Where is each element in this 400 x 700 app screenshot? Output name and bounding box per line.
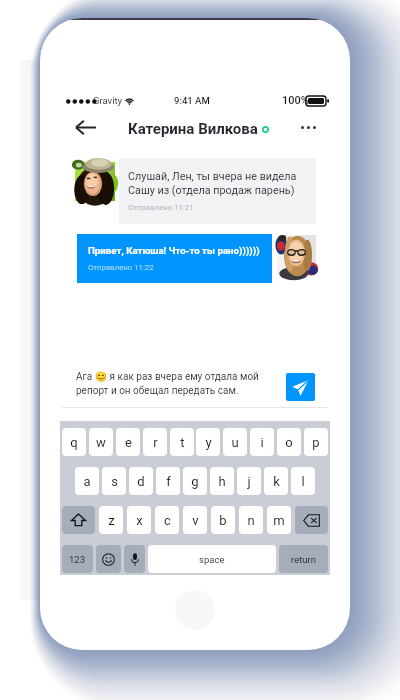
staticText: s bbox=[111, 474, 118, 489]
button[interactable]: j bbox=[237, 467, 261, 495]
staticText: c bbox=[164, 513, 171, 528]
button[interactable]: Катерина Вилкова bbox=[128, 117, 269, 140]
button[interactable]: i bbox=[250, 428, 274, 456]
button[interactable]: q bbox=[62, 428, 86, 456]
button[interactable]: o bbox=[277, 428, 301, 456]
button[interactable]: p bbox=[304, 428, 328, 456]
button[interactable]: g bbox=[183, 467, 207, 495]
staticText: Катерина Вилкова bbox=[128, 120, 258, 138]
button[interactable]: x bbox=[127, 506, 151, 534]
button[interactable]: y bbox=[196, 428, 220, 456]
button[interactable]: b bbox=[211, 506, 235, 534]
button[interactable]: h bbox=[210, 467, 234, 495]
button[interactable]: d bbox=[129, 467, 153, 495]
staticText: Привет, Катюша! Что-то ты рано)))))) bbox=[88, 245, 260, 256]
staticText: d bbox=[137, 474, 145, 489]
staticText: Отправлено 11:21 bbox=[128, 203, 194, 212]
button[interactable]: Numbers bbox=[62, 545, 93, 573]
staticText: b bbox=[219, 513, 227, 528]
button[interactable]: z bbox=[99, 506, 123, 534]
button[interactable]: Привет, Катюша! Что-то ты рано)))))) bbox=[77, 234, 272, 283]
staticText: m bbox=[273, 513, 285, 528]
button[interactable]: More options bbox=[294, 115, 322, 139]
staticText: Gravity bbox=[93, 95, 123, 106]
button[interactable]: s bbox=[102, 467, 126, 495]
staticText: 100% bbox=[282, 94, 309, 107]
staticText: Отправлено 11:22 bbox=[88, 263, 154, 272]
staticText: x bbox=[136, 513, 143, 528]
button[interactable]: w bbox=[89, 428, 113, 456]
staticText: f bbox=[166, 474, 171, 489]
button[interactable]: Contact avatar bbox=[75, 162, 115, 201]
button[interactable]: Return bbox=[279, 545, 328, 573]
staticText: return bbox=[291, 554, 316, 565]
button[interactable]: Emoji bbox=[96, 545, 121, 573]
staticText: g bbox=[191, 474, 199, 489]
staticText: w bbox=[96, 435, 106, 450]
button[interactable]: t bbox=[170, 428, 194, 456]
staticText: z bbox=[108, 513, 115, 528]
staticText: k bbox=[273, 474, 280, 489]
button[interactable]: e bbox=[116, 428, 140, 456]
staticText: Слушай, Лен, ты вчера не видела Сашу из … bbox=[128, 170, 297, 196]
button[interactable]: Send bbox=[286, 373, 315, 401]
button[interactable]: k bbox=[264, 467, 288, 495]
button[interactable]: v bbox=[183, 506, 207, 534]
button[interactable]: space bbox=[148, 545, 276, 573]
staticText: i bbox=[260, 435, 264, 450]
button[interactable]: Слушай, Лен, ты вчера не видела Сашу из … bbox=[119, 158, 316, 224]
staticText: y bbox=[205, 435, 212, 450]
staticText: h bbox=[218, 474, 226, 489]
staticText: u bbox=[231, 435, 239, 450]
button[interactable]: Your avatar bbox=[277, 235, 316, 274]
staticText: q bbox=[70, 435, 78, 450]
button[interactable]: c bbox=[155, 506, 179, 534]
button[interactable]: r bbox=[143, 428, 167, 456]
staticText: 123 bbox=[69, 554, 86, 565]
button[interactable]: m bbox=[267, 506, 291, 534]
button[interactable]: a bbox=[75, 467, 99, 495]
button[interactable]: f bbox=[156, 467, 180, 495]
staticText: e bbox=[125, 435, 132, 450]
staticText: a bbox=[83, 474, 91, 489]
staticText: t bbox=[180, 435, 185, 450]
button[interactable]: Shift bbox=[62, 506, 95, 534]
button[interactable]: u bbox=[223, 428, 247, 456]
staticText: o bbox=[285, 435, 293, 450]
button[interactable]: Backspace bbox=[295, 506, 328, 534]
button[interactable]: Dictation bbox=[124, 545, 145, 573]
button[interactable]: l bbox=[291, 467, 315, 495]
staticText: r bbox=[153, 435, 158, 450]
staticText: n bbox=[247, 513, 255, 528]
staticText: j bbox=[247, 474, 251, 489]
button[interactable]: Back bbox=[67, 115, 103, 139]
staticText: p bbox=[312, 435, 320, 450]
button[interactable]: n bbox=[239, 506, 263, 534]
staticText: Ага 😊 я как раз вчера ему отдала мой реп… bbox=[76, 371, 259, 397]
staticText: space bbox=[199, 554, 225, 565]
staticText: l bbox=[301, 474, 305, 489]
button[interactable]: Ага 😊 я как раз вчера ему отдала мой реп… bbox=[76, 366, 276, 402]
staticText: v bbox=[192, 513, 199, 528]
staticText: 9:41 AM bbox=[174, 95, 210, 106]
